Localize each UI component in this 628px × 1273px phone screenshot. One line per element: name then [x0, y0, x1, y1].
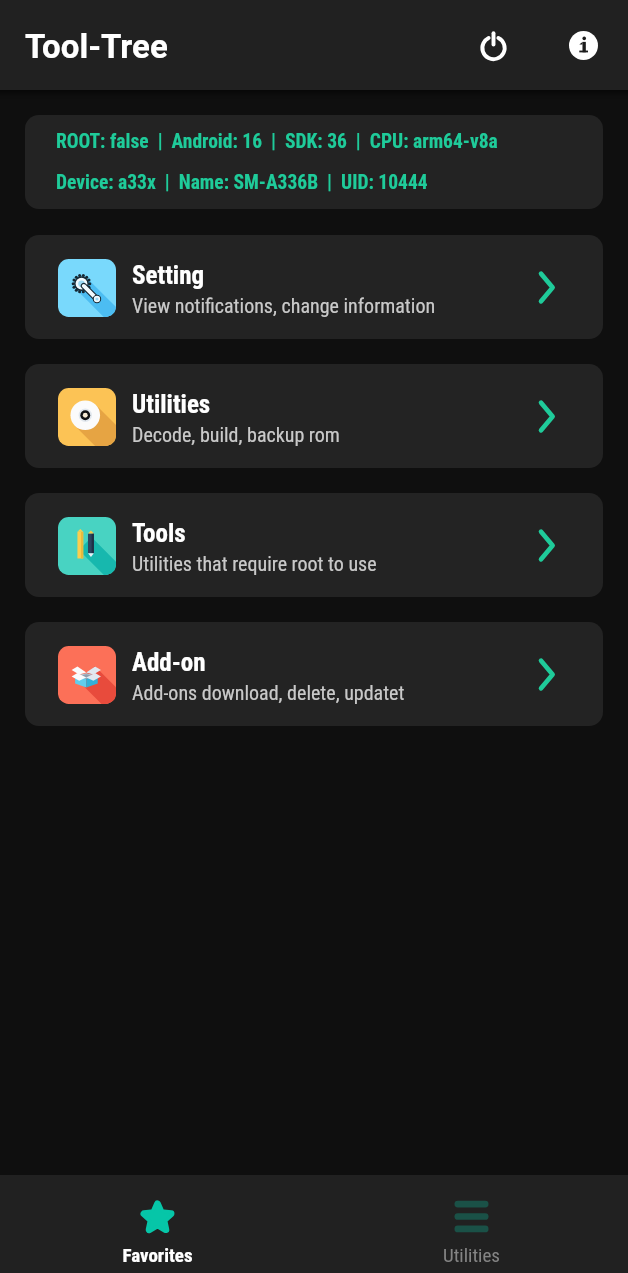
- staticText: Tools: [132, 519, 186, 548]
- staticText: Utilities: [132, 390, 211, 419]
- button[interactable]: Setting: [25, 235, 603, 339]
- button[interactable]: Power: [464, 16, 522, 74]
- button[interactable]: Info: [554, 16, 612, 74]
- button[interactable]: Favorites: [0, 1175, 314, 1273]
- staticText: Utilities: [443, 1244, 500, 1266]
- staticText: Decode, build, backup rom: [132, 423, 340, 446]
- button[interactable]: Add-on: [25, 622, 603, 726]
- button[interactable]: Utilities: [25, 364, 603, 468]
- staticText: Device: a33x | Name: SM-A336B | UID: 104…: [56, 171, 428, 194]
- staticText: Tool-Tree: [25, 27, 168, 66]
- staticText: Setting: [132, 261, 205, 290]
- staticText: Favorites: [122, 1244, 193, 1266]
- button[interactable]: Utilities: [314, 1175, 628, 1273]
- staticText: Add-ons download, delete, updatet: [132, 681, 405, 704]
- staticText: ROOT: false | Android: 16 | SDK: 36 | CP…: [56, 130, 498, 153]
- staticText: View notifications, change information: [132, 294, 436, 317]
- staticText: Add-on: [132, 648, 206, 677]
- staticText: Utilities that require root to use: [132, 552, 377, 575]
- button[interactable]: Tools: [25, 493, 603, 597]
